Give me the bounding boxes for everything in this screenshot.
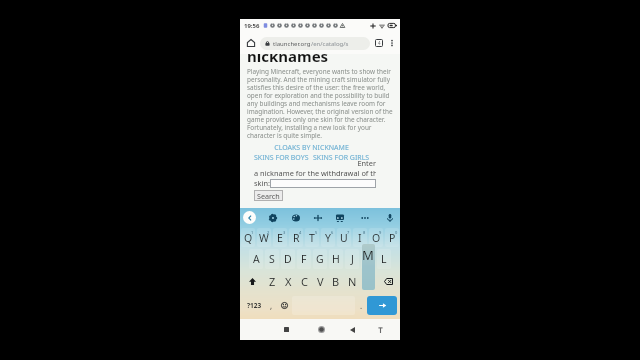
staticText: nicknames <box>247 46 329 66</box>
staticText: D <box>284 252 292 266</box>
button[interactable]: tlauncher.org <box>260 37 370 50</box>
staticText: skin: <box>254 178 270 188</box>
button[interactable]: SKINS FOR BOYS <box>254 153 309 163</box>
button[interactable]: Q <box>241 228 255 247</box>
staticText: C <box>301 274 308 289</box>
staticText: X <box>285 274 292 289</box>
button[interactable]: More <box>358 211 371 224</box>
staticText: G <box>316 252 324 266</box>
button[interactable]: C <box>296 270 312 292</box>
button[interactable]: U <box>337 228 351 247</box>
button[interactable]: S <box>265 249 279 269</box>
button[interactable]: Voice input <box>383 211 396 224</box>
staticText: Enter <box>254 158 376 168</box>
staticText: U <box>340 231 348 245</box>
button[interactable]: Z <box>264 270 280 292</box>
staticText: Z <box>269 274 276 289</box>
staticText: E <box>277 231 283 245</box>
staticText: ?123 <box>247 301 262 310</box>
staticText: 19:56 <box>244 22 260 30</box>
staticText: Search <box>257 191 280 201</box>
staticText: I <box>358 231 362 245</box>
button[interactable]: P <box>385 228 399 247</box>
button[interactable]: , <box>265 296 277 315</box>
staticText: W <box>259 231 269 245</box>
button[interactable] <box>270 179 376 188</box>
button[interactable]: Shift <box>240 270 264 292</box>
staticText: S <box>269 252 275 266</box>
button[interactable]: A <box>249 249 263 269</box>
staticText: P <box>389 231 396 245</box>
staticText: 7 <box>347 230 350 235</box>
staticText: R <box>293 231 300 245</box>
button[interactable]: H <box>329 249 343 269</box>
button[interactable]: M <box>360 270 376 292</box>
button[interactable]: Home <box>313 319 329 340</box>
staticText: 2 <box>267 230 270 235</box>
button[interactable]: V <box>312 270 328 292</box>
staticText: 5 <box>315 230 318 235</box>
button[interactable]: Search <box>254 190 283 201</box>
button[interactable]: CLOAKS BY NICKNAME <box>247 143 376 153</box>
button[interactable]: Back <box>344 319 360 340</box>
staticText: F <box>301 252 307 266</box>
staticText: H <box>332 252 340 266</box>
button[interactable]: SKINS FOR GIRLS <box>313 153 370 163</box>
button[interactable]: T <box>305 228 319 247</box>
staticText: K <box>365 252 372 266</box>
button[interactable]: J <box>345 249 359 269</box>
staticText: 4 <box>299 230 302 235</box>
staticText: J <box>351 252 354 266</box>
button[interactable]: O <box>369 228 383 247</box>
button[interactable]: R <box>289 228 303 247</box>
button[interactable]: Themes <box>289 211 302 224</box>
button[interactable]: N <box>344 270 360 292</box>
button[interactable]: Emoji <box>277 296 292 315</box>
button[interactable]: W <box>257 228 271 247</box>
staticText: 6 <box>331 230 334 235</box>
button[interactable]: K <box>361 249 375 269</box>
button[interactable]: Recents <box>278 319 294 340</box>
button[interactable]: F <box>297 249 311 269</box>
staticText: 3 <box>283 230 286 235</box>
staticText: B <box>332 274 340 289</box>
button[interactable]: D <box>281 249 295 269</box>
button[interactable]: More options <box>386 37 398 49</box>
staticText: M <box>362 246 374 262</box>
button[interactable]: Close toolbar <box>243 211 256 224</box>
staticText: Y <box>325 231 331 245</box>
button[interactable]: ?123 <box>243 296 265 315</box>
button[interactable]: I <box>353 228 367 247</box>
button[interactable]: Y <box>321 228 335 247</box>
staticText: N <box>348 274 357 289</box>
button[interactable]: Text editing <box>311 211 324 224</box>
button[interactable]: X <box>280 270 296 292</box>
staticText: /en/catalog/s <box>311 40 349 48</box>
staticText: 4 <box>378 40 381 46</box>
button[interactable]: B <box>328 270 344 292</box>
staticText: 0 <box>395 230 398 235</box>
button[interactable]: Home <box>244 36 258 50</box>
button[interactable]: E <box>273 228 287 247</box>
staticText: 1 <box>251 230 254 235</box>
button[interactable]: Tabs <box>372 36 386 50</box>
button[interactable]: G <box>313 249 327 269</box>
button[interactable]: Hide keyboard <box>372 319 388 340</box>
button[interactable]: Backspace <box>376 270 400 292</box>
staticText: 9 <box>379 230 382 235</box>
button[interactable]: L <box>377 249 391 269</box>
staticText: , <box>270 300 273 311</box>
staticText: T <box>309 231 315 245</box>
staticText: 8 <box>363 230 366 235</box>
button[interactable]: Settings <box>266 211 279 224</box>
staticText: A <box>253 252 260 266</box>
staticText: Q <box>244 231 253 245</box>
button[interactable]: . <box>355 296 367 315</box>
button[interactable]: Enter <box>367 296 397 315</box>
staticText: a nickname for the withdrawal of the <box>254 168 376 178</box>
staticText: O <box>372 231 381 245</box>
button[interactable]: Clipboard <box>333 211 346 224</box>
staticText: Playing Minecraft, everyone wants to sho… <box>247 67 393 140</box>
